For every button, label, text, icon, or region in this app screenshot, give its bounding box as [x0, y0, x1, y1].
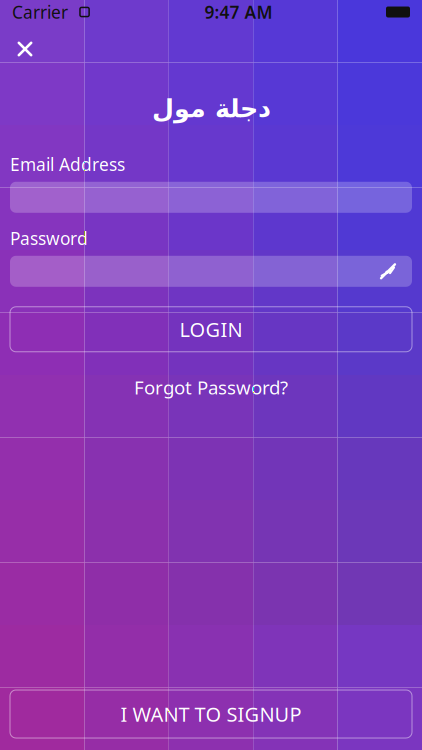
button[interactable]: Show password: [376, 260, 412, 282]
button[interactable]: Forgot Password?: [118, 367, 304, 408]
staticText: I WANT TO SIGNUP: [120, 701, 301, 727]
staticText: دجلة مول: [151, 94, 270, 123]
staticText: Email Address: [10, 153, 125, 176]
staticText: 9:47 AM: [204, 0, 272, 23]
button[interactable]: I WANT TO SIGNUP: [10, 690, 412, 738]
staticText: Carrier: [12, 0, 68, 23]
button[interactable]: LOGIN: [10, 307, 412, 352]
staticText: Forgot Password?: [134, 375, 288, 400]
staticText: LOGIN: [179, 316, 242, 343]
button[interactable]: Close: [0, 30, 38, 68]
staticText: Password: [10, 227, 88, 250]
